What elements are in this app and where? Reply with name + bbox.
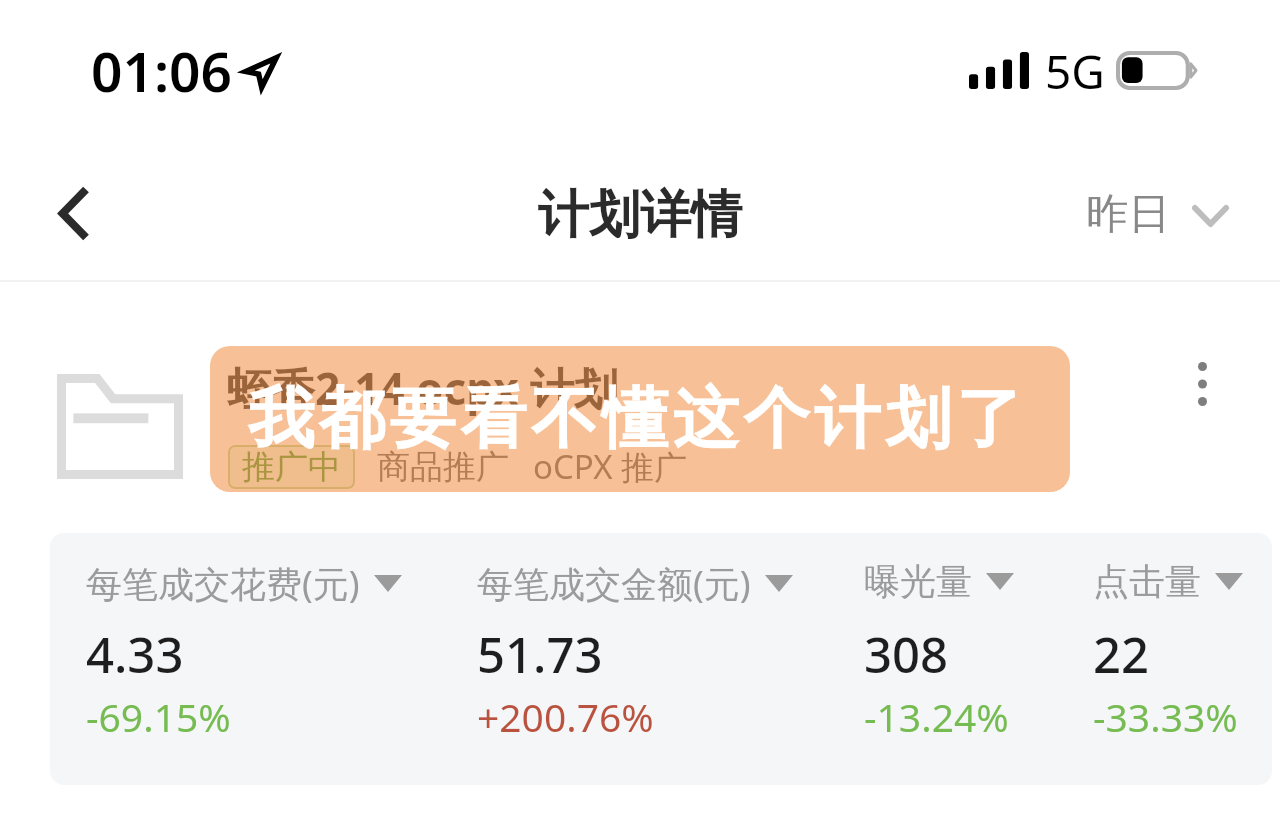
staticText: 每笔成交金额(元) [477, 559, 751, 608]
staticText: -13.24% [864, 690, 1009, 743]
button[interactable]: 曝光量 [864, 559, 1014, 604]
staticText: -69.15% [86, 690, 231, 743]
staticText: 昨日 [1086, 188, 1170, 241]
button[interactable]: 昨日 [1086, 188, 1228, 241]
staticText: 蛭香2-14 ocpx 计划 [227, 358, 619, 418]
staticText: oCPX 推广 [533, 444, 688, 489]
button[interactable]: 点击量 [1093, 559, 1243, 604]
button[interactable]: 每笔成交金额(元) [477, 559, 793, 608]
button[interactable]: Plan 蛭香2-14 ocpx 计划 [0, 300, 1280, 525]
staticText: 计划详情 [538, 183, 742, 247]
staticText: +200.76% [477, 690, 654, 743]
button[interactable]: 每笔成交花费(元) [86, 559, 402, 608]
staticText: 推广中 [242, 446, 341, 488]
staticText: 商品推广 [377, 446, 509, 488]
staticText: 5G [1045, 40, 1105, 103]
button[interactable]: 推广中 [242, 445, 341, 489]
staticText: 22 [1093, 621, 1150, 688]
staticText: 51.73 [477, 621, 603, 688]
button[interactable]: More options [1168, 342, 1236, 426]
staticText: 每笔成交花费(元) [86, 559, 360, 608]
staticText: 我都要看不懂这个计划了 [248, 377, 1027, 460]
staticText: 点击量 [1093, 559, 1201, 604]
staticText: 01:06 [91, 33, 233, 108]
staticText: 曝光量 [864, 559, 972, 604]
staticText: 308 [864, 621, 949, 688]
button[interactable]: Back [36, 175, 112, 251]
staticText: -33.33% [1093, 690, 1238, 743]
staticText: 4.33 [86, 621, 184, 688]
